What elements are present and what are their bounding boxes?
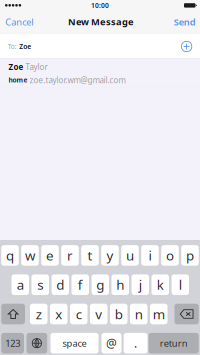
button[interactable]: u (121, 245, 139, 266)
staticText: a (17, 276, 24, 293)
button[interactable]: l (171, 274, 189, 295)
staticText: New Message (68, 15, 134, 28)
button[interactable]: k (151, 274, 169, 295)
button[interactable]: Shift (1, 304, 25, 324)
staticText: d (56, 276, 64, 293)
button[interactable]: t (81, 245, 99, 266)
staticText: j (139, 276, 142, 293)
staticText: Send (174, 16, 196, 28)
button[interactable]: v (90, 304, 107, 324)
button[interactable]: Add contact (178, 37, 196, 55)
button[interactable]: f (71, 274, 89, 295)
staticText: p (186, 246, 194, 264)
button[interactable]: w (21, 245, 39, 266)
button[interactable]: d (51, 274, 69, 295)
button[interactable]: return (148, 333, 199, 353)
button[interactable]: m (150, 304, 167, 324)
staticText: Zoe (19, 42, 31, 51)
button[interactable]: e (41, 245, 59, 266)
staticText: o (166, 246, 174, 264)
button[interactable]: x (50, 304, 67, 324)
button[interactable]: c (70, 304, 87, 324)
button[interactable]: n (130, 304, 147, 324)
staticText: h (116, 276, 124, 293)
staticText: @ (106, 335, 117, 351)
staticText: x (55, 305, 62, 323)
button[interactable]: Send (168, 11, 200, 33)
staticText: z (36, 305, 42, 323)
staticText: f (78, 276, 83, 293)
staticText: Zoe (9, 61, 26, 72)
button[interactable]: s (31, 274, 49, 295)
staticText: 10:00 (91, 1, 109, 10)
button[interactable]: o (161, 245, 179, 266)
staticText: n (135, 305, 143, 323)
button[interactable]: z (30, 304, 47, 324)
button[interactable]: b (110, 304, 127, 324)
button[interactable]: . (124, 333, 147, 353)
staticText: u (126, 246, 134, 264)
staticText: g (96, 276, 104, 293)
button[interactable]: @ (101, 333, 121, 353)
button[interactable]: a (11, 274, 29, 295)
button[interactable]: Delete (174, 304, 199, 324)
button[interactable]: y (101, 245, 119, 266)
button[interactable]: j (131, 274, 149, 295)
button[interactable]: q (1, 245, 19, 266)
staticText: r (67, 246, 73, 264)
staticText: l (179, 276, 182, 293)
staticText: s (37, 276, 43, 293)
staticText: zoe.taylor.wm@gmail.com (30, 75, 126, 85)
staticText: 123 (5, 337, 20, 349)
staticText: v (95, 305, 102, 323)
button[interactable]: i (141, 245, 159, 266)
button[interactable]: space (50, 333, 98, 353)
button[interactable]: p (181, 245, 199, 266)
staticText: home (9, 76, 30, 84)
staticText: space (62, 337, 86, 349)
staticText: k (157, 276, 164, 293)
staticText: . (134, 335, 137, 351)
button[interactable]: h (111, 274, 129, 295)
staticText: b (115, 305, 123, 323)
staticText: y (106, 246, 113, 264)
button[interactable]: Zoe (0, 59, 200, 87)
staticText: c (76, 305, 82, 323)
button[interactable]: r (61, 245, 79, 266)
staticText: i (148, 246, 151, 264)
button[interactable]: Cancel (0, 11, 38, 33)
button[interactable]: g (91, 274, 109, 295)
button[interactable]: Next keyboard (26, 333, 47, 353)
staticText: return (160, 337, 188, 349)
button[interactable]: 123 (1, 333, 24, 353)
staticText: e (46, 246, 54, 264)
staticText: Taylor (26, 61, 48, 72)
staticText: q (6, 246, 14, 264)
staticText: m (153, 305, 165, 323)
staticText: To: (8, 42, 17, 51)
staticText: t (87, 246, 92, 264)
staticText: w (25, 246, 35, 264)
staticText: Cancel (5, 16, 33, 28)
